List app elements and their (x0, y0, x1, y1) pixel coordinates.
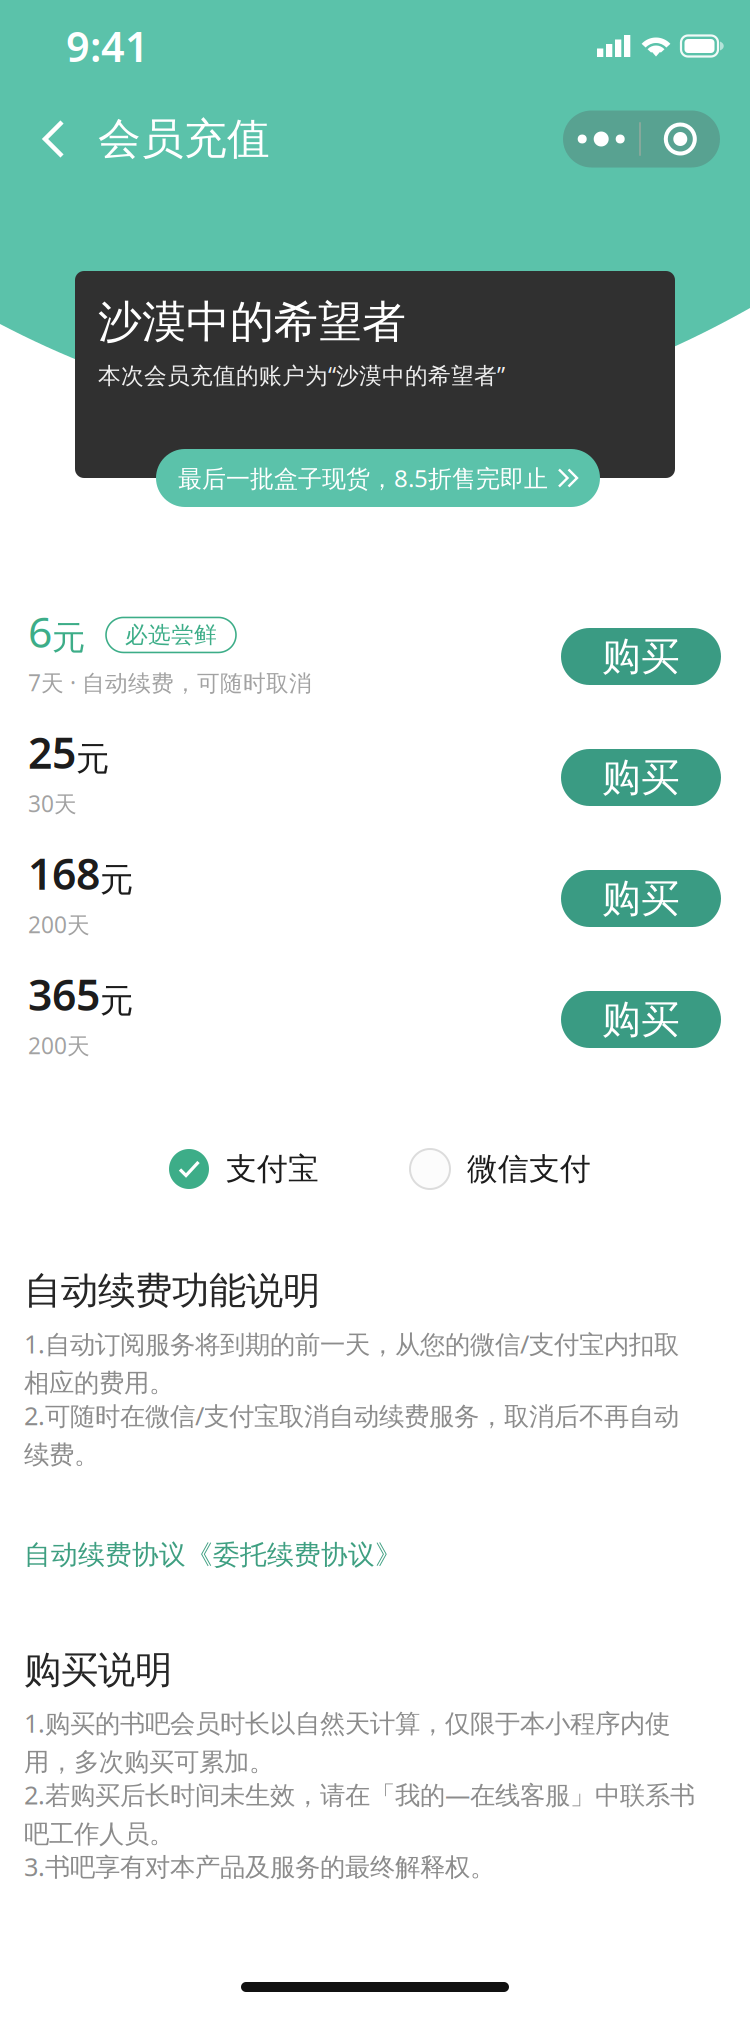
button[interactable]: 支付宝 (169, 1149, 319, 1189)
staticText: 25 (28, 724, 76, 780)
button[interactable]: 购买 (561, 749, 721, 806)
staticText: 本次会员充值的账户为“沙漠中的希望者” (98, 360, 505, 390)
staticText: 沙漠中的希望者 (98, 295, 406, 349)
staticText: 200天 (28, 909, 90, 939)
button[interactable]: 关闭 (641, 110, 720, 167)
staticText: 2.若购买后长时间未生效，请在「我的—在线客服」中联系书吧工作人员。 (24, 1778, 695, 1849)
staticText: 元 (52, 617, 85, 658)
button[interactable]: 购买 (561, 628, 721, 685)
staticText: 168 (28, 845, 100, 901)
staticText: 3.书吧享有对本产品及服务的最终解释权。 (24, 1849, 495, 1883)
staticText: 元 (100, 859, 133, 900)
staticText: 元 (100, 980, 133, 1021)
staticText: 7天 · 自动续费，可随时取消 (28, 667, 312, 697)
staticText: 最后一批盒子现货，8.5折售完即止 (178, 462, 548, 494)
staticText: 购买 (602, 754, 680, 801)
staticText: 微信支付 (467, 1150, 591, 1188)
staticText: 必选尝鲜 (125, 621, 217, 649)
staticText: 2.可随时在微信/支付宝取消自动续费服务，取消后不再自动续费。 (24, 1399, 679, 1470)
staticText: 支付宝 (226, 1150, 319, 1188)
staticText: 元 (76, 738, 109, 779)
staticText: 6 (28, 603, 52, 659)
staticText: 会员充值 (98, 113, 270, 165)
button[interactable]: 购买 (561, 870, 721, 927)
staticText: 购买 (602, 633, 680, 680)
staticText: 购买 (602, 875, 680, 922)
staticText: 自动续费功能说明 (24, 1268, 320, 1314)
staticText: 365 (28, 966, 100, 1022)
staticText: 30天 (28, 788, 77, 818)
button[interactable]: 微信支付 (410, 1149, 591, 1189)
button[interactable]: 自动续费协议《委托续费协议》 (24, 1538, 402, 1571)
staticText: 购买说明 (24, 1647, 172, 1693)
button[interactable]: 购买 (561, 991, 721, 1048)
staticText: 9:41 (66, 19, 149, 73)
staticText: 1.自动订阅服务将到期的前一天，从您的微信/支付宝内扣取相应的费用。 (24, 1327, 679, 1399)
button[interactable]: 最后一批盒子现货，8.5折售完即止 (156, 449, 600, 507)
staticText: 购买 (602, 996, 680, 1043)
staticText: 自动续费协议《委托续费协议》 (24, 1538, 402, 1571)
button[interactable]: 更多 (563, 110, 639, 167)
staticText: 200天 (28, 1030, 90, 1060)
staticText: 1.购买的书吧会员时长以自然天计算，仅限于本小程序内使用，多次购买可累加。 (24, 1706, 670, 1778)
button[interactable]: 返回 (26, 105, 82, 173)
